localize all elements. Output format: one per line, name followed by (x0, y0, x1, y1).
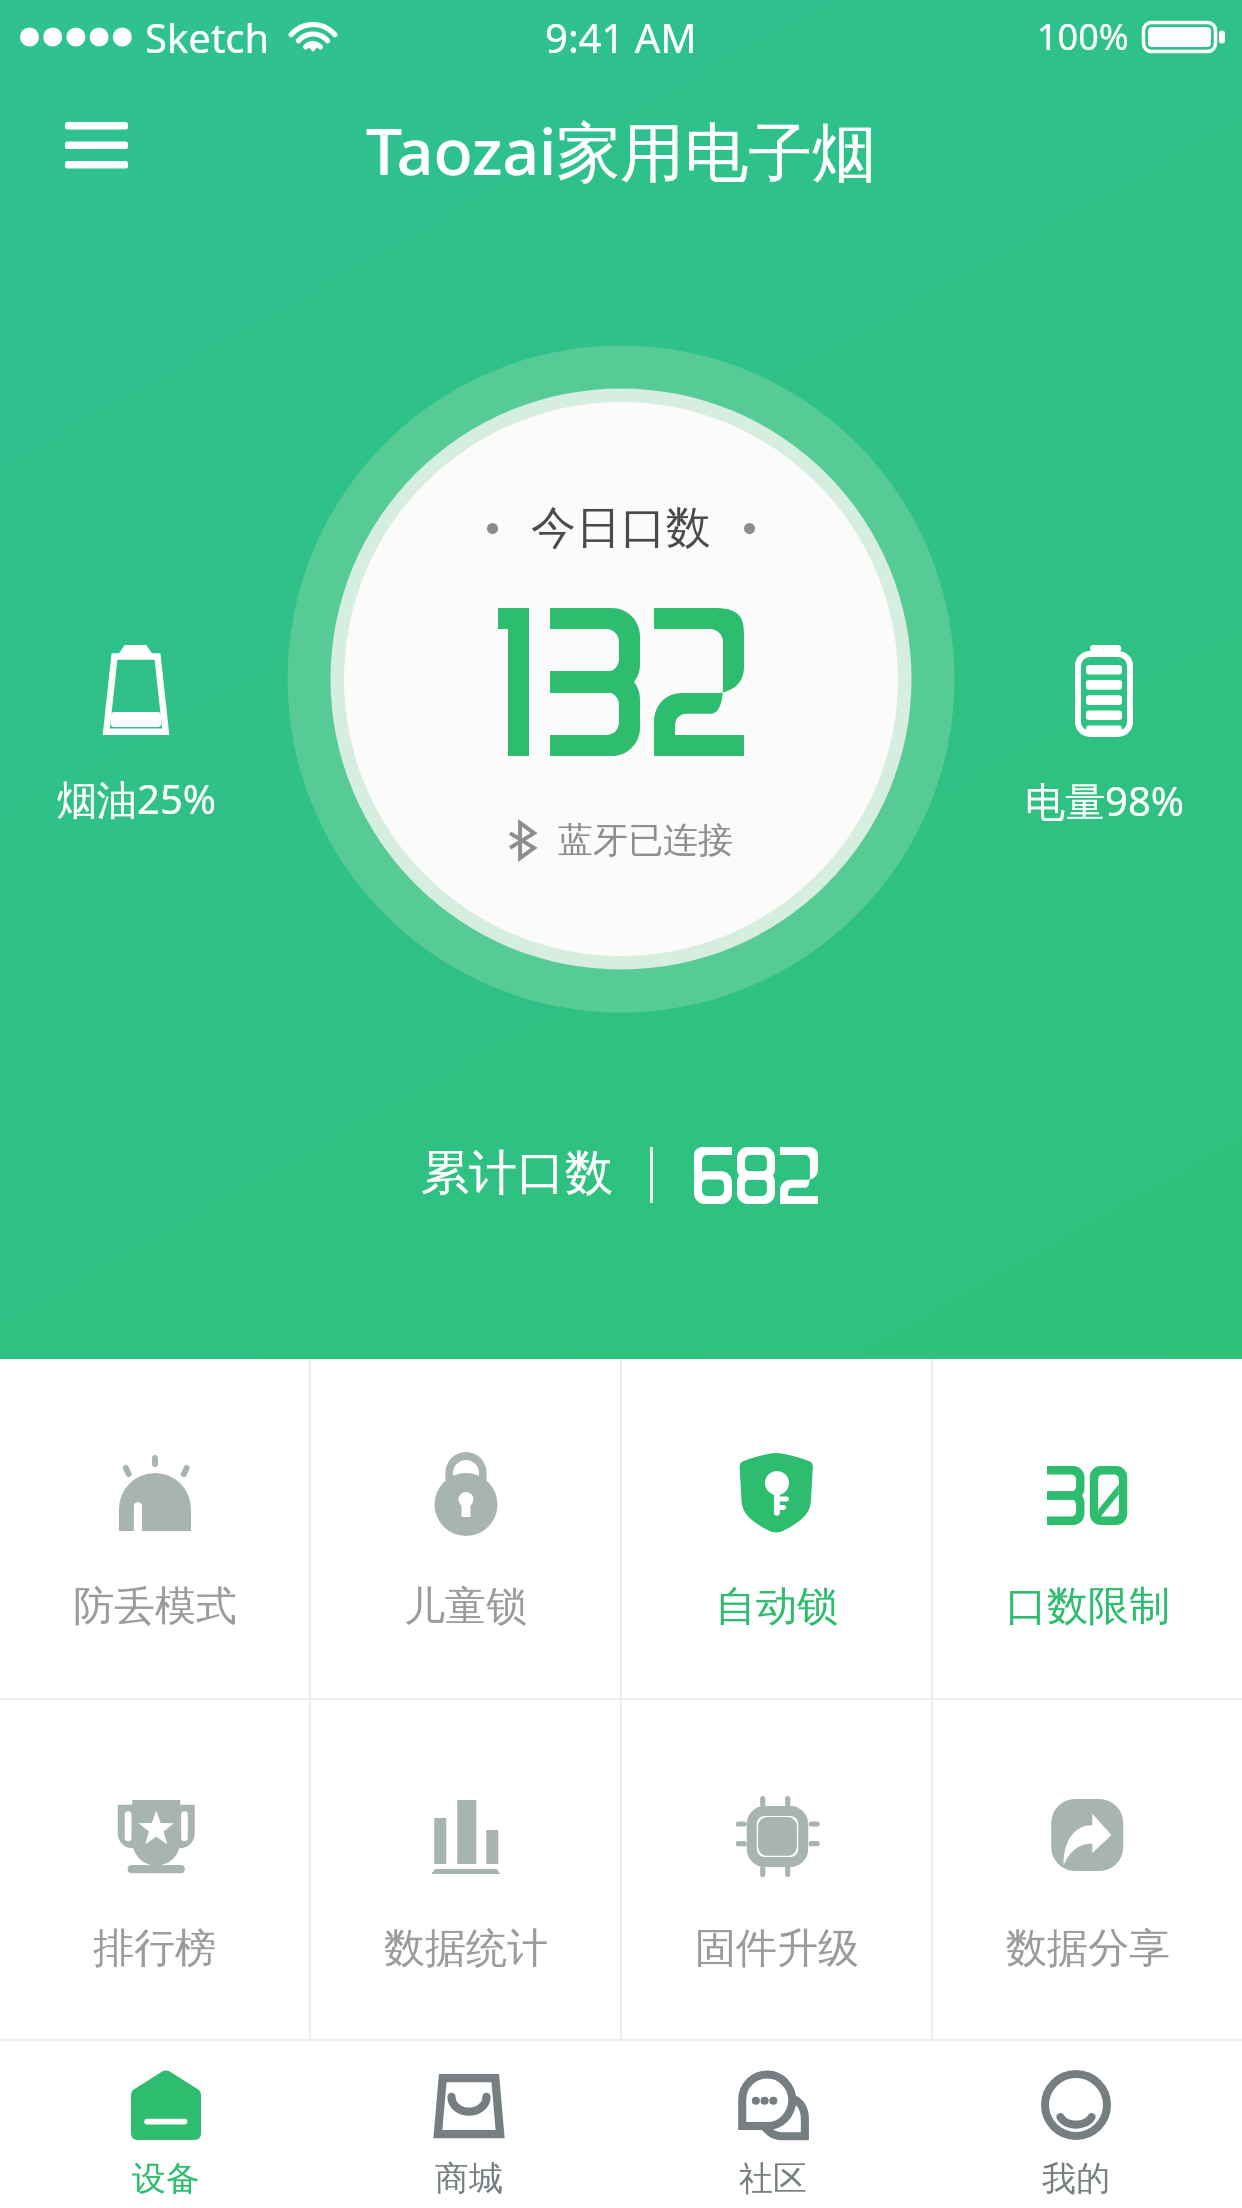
button[interactable]: 数据统计 (311, 1700, 620, 2039)
button[interactable]: 排行榜 (0, 1700, 309, 2039)
button[interactable]: 自动锁 (622, 1359, 931, 1698)
staticText: 设备 (132, 2157, 200, 2200)
button[interactable]: 社区 (663, 2041, 883, 2208)
button[interactable]: 儿童锁 (311, 1359, 620, 1698)
staticText: 数据分享 (1006, 1923, 1170, 1975)
staticText: 防丢模式 (73, 1581, 237, 1633)
staticText: 口数限制 (1006, 1581, 1170, 1633)
staticText: 100% (1037, 12, 1129, 61)
button[interactable]: 烟油25% (36, 645, 236, 826)
staticText: 儿童锁 (404, 1581, 527, 1633)
staticText: Sketch (145, 10, 270, 64)
staticText: 固件升级 (695, 1923, 859, 1975)
staticText: 商城 (435, 2157, 503, 2200)
staticText: 蓝牙已连接 (558, 818, 733, 862)
button[interactable]: 商城 (359, 2041, 579, 2208)
staticText: 我的 (1042, 2157, 1110, 2200)
staticText: 自动锁 (715, 1581, 838, 1633)
staticText: 9:41 AM (545, 10, 697, 64)
staticText: 烟油25% (57, 771, 216, 826)
staticText: 排行榜 (93, 1923, 216, 1975)
staticText: 今日口数 (531, 500, 711, 557)
button[interactable]: 防丢模式 (0, 1359, 309, 1698)
button[interactable]: 我的 (966, 2041, 1186, 2208)
button[interactable]: 数据分享 (933, 1700, 1242, 2039)
button[interactable]: 固件升级 (622, 1700, 931, 2039)
staticText: Taozai家用电子烟 (366, 107, 877, 194)
button[interactable]: 设备 (56, 2041, 276, 2208)
button[interactable]: Open navigation menu (36, 90, 156, 200)
button[interactable]: 电量98% (1004, 645, 1204, 828)
staticText: 社区 (739, 2157, 807, 2200)
staticText: 电量98% (1025, 773, 1184, 828)
staticText: 数据统计 (384, 1923, 548, 1975)
button[interactable]: 口数限制 (933, 1359, 1242, 1698)
staticText: 累计口数 (421, 1143, 613, 1203)
